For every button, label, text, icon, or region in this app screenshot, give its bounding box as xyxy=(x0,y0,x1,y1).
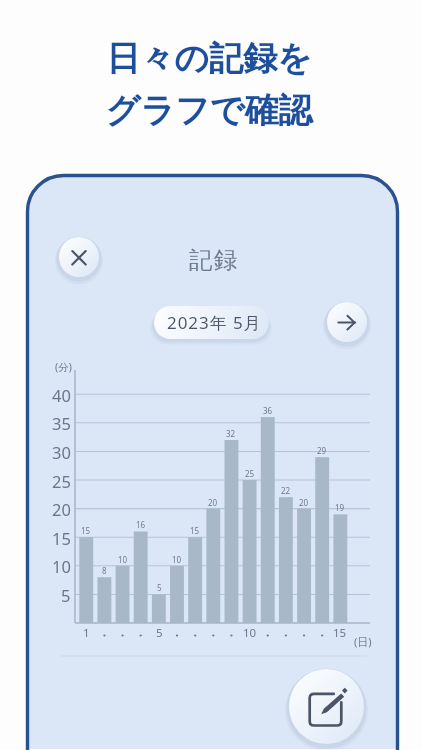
staticText: 10 xyxy=(172,554,182,565)
staticText: 5 xyxy=(156,625,163,641)
staticText: 10 xyxy=(243,625,257,641)
button[interactable]: Edit xyxy=(285,666,368,749)
staticText: 25 xyxy=(52,470,71,492)
staticText: 日々の記録を xyxy=(106,37,312,80)
staticText: 15 xyxy=(52,527,71,549)
staticText: 16 xyxy=(136,519,146,530)
staticText: 15 xyxy=(333,625,347,641)
staticText: 30 xyxy=(52,441,71,463)
staticText: 29 xyxy=(317,445,327,456)
staticText: 記録 xyxy=(188,245,238,275)
staticText: 5 xyxy=(61,584,71,606)
staticText: 10 xyxy=(52,555,71,577)
staticText: 5 xyxy=(157,582,162,593)
staticText: 20 xyxy=(52,498,71,520)
staticText: 32 xyxy=(226,428,236,439)
staticText: 40 xyxy=(52,384,71,406)
button[interactable]: Close xyxy=(55,234,103,282)
staticText: 15 xyxy=(190,525,200,536)
staticText: 20 xyxy=(299,497,309,508)
staticText: 10 xyxy=(118,554,128,565)
button[interactable]: 2023年 5月 xyxy=(154,306,269,339)
staticText: 22 xyxy=(281,485,291,496)
staticText: グラフで確認 xyxy=(105,89,313,132)
staticText: 15 xyxy=(81,525,91,536)
button[interactable]: Next month xyxy=(323,299,371,347)
staticText: 8 xyxy=(102,565,107,576)
staticText: 19 xyxy=(335,502,345,513)
staticText: 25 xyxy=(245,468,255,479)
staticText: (日) xyxy=(354,634,372,649)
staticText: 1 xyxy=(83,625,90,641)
staticText: 36 xyxy=(263,405,273,416)
staticText: 20 xyxy=(208,497,218,508)
staticText: (分) xyxy=(55,360,72,374)
staticText: 35 xyxy=(52,412,71,434)
staticText: 2023年 5月 xyxy=(167,311,262,334)
